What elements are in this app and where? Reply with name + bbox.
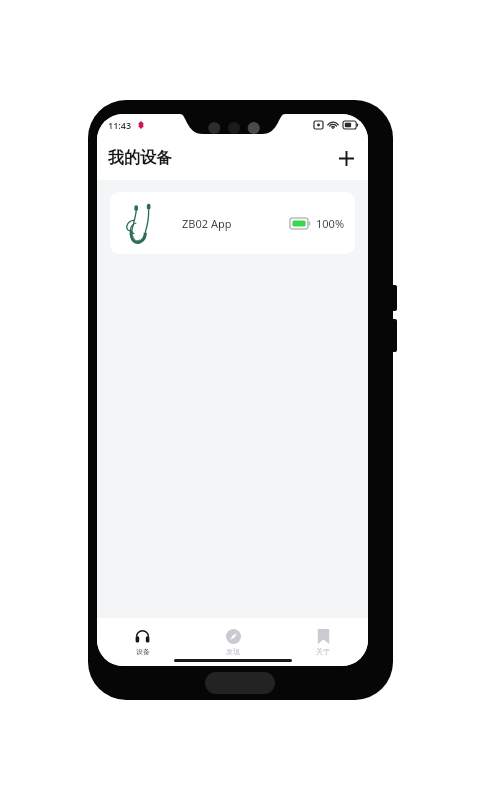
staticText: 设备 bbox=[136, 647, 150, 656]
staticText: 100% bbox=[316, 216, 345, 231]
button[interactable]: 设备 bbox=[97, 618, 188, 666]
button[interactable]: Add device bbox=[330, 142, 362, 174]
button[interactable]: 关于 bbox=[278, 618, 368, 666]
button[interactable]: 发现 bbox=[188, 618, 278, 666]
button[interactable]: ZB02 App bbox=[110, 192, 355, 254]
staticText: 11:43 bbox=[108, 119, 132, 131]
staticText: ZB02 App bbox=[182, 216, 232, 231]
staticText: 发现 bbox=[226, 647, 240, 656]
staticText: 我的设备 bbox=[108, 148, 172, 168]
staticText: 关于 bbox=[316, 647, 330, 656]
